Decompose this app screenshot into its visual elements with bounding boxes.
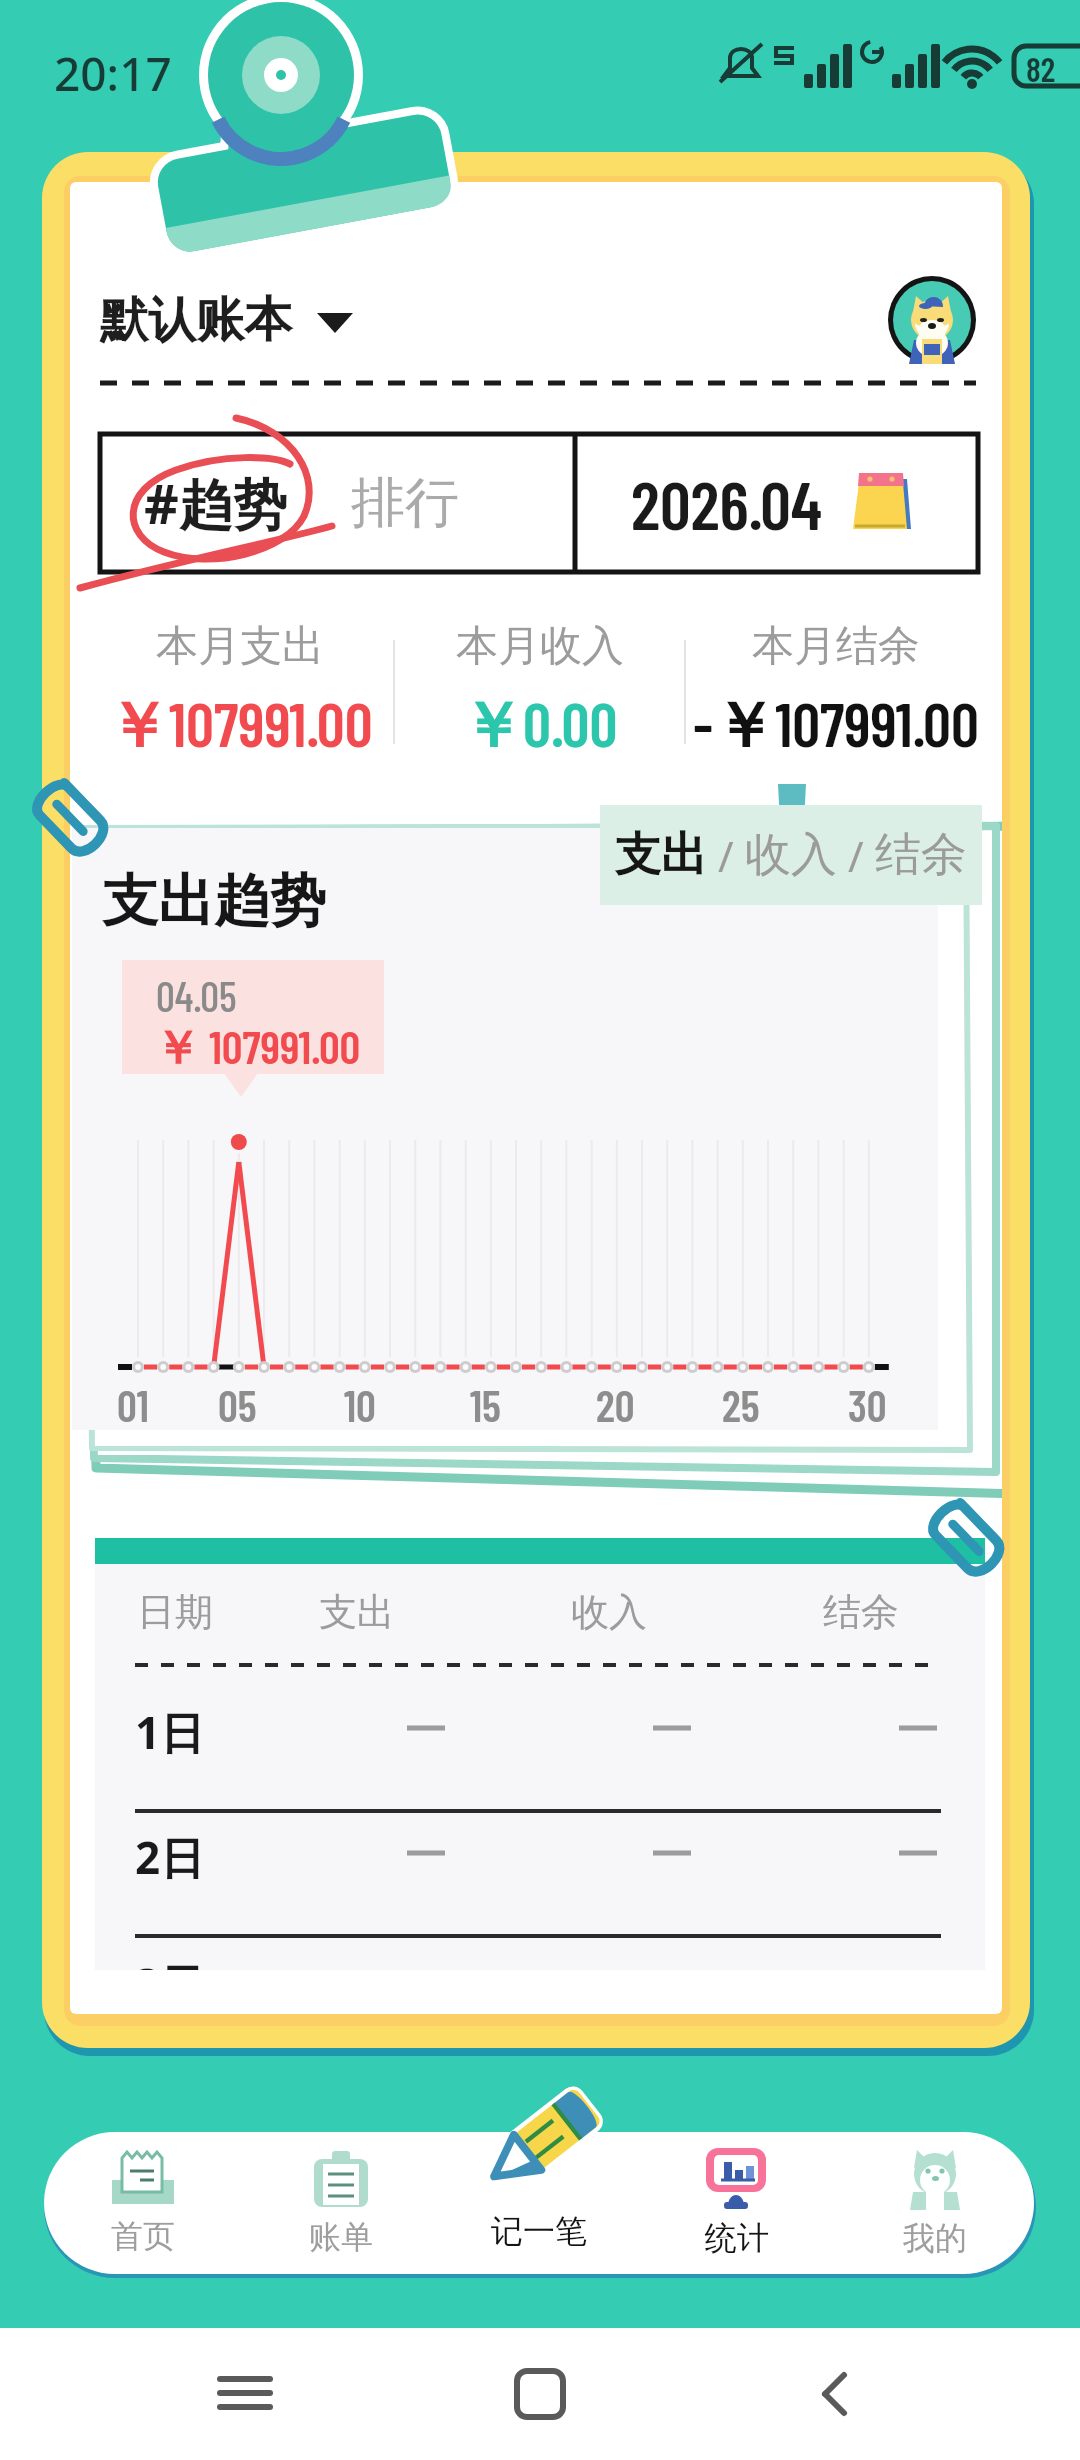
button[interactable]: 本月收入 xyxy=(395,614,684,770)
staticText: 记一笔 xyxy=(491,2211,587,2251)
button[interactable]: 2日 xyxy=(95,1815,985,1940)
staticText: 支出趋势 xyxy=(102,866,326,937)
staticText: 25 xyxy=(722,1378,760,1431)
button[interactable]: Back xyxy=(785,2344,885,2444)
staticText: 排行 xyxy=(351,469,459,537)
staticText: ￥0.00 xyxy=(461,685,618,765)
staticText: / xyxy=(837,827,875,884)
button[interactable]: Add record xyxy=(462,2060,622,2220)
staticText: ￥107991.00 xyxy=(107,685,373,765)
button[interactable]: Profile xyxy=(888,276,976,364)
staticText: 支出 xyxy=(615,826,707,884)
button[interactable]: Recents xyxy=(195,2344,295,2444)
button[interactable]: #趋势 xyxy=(134,450,297,556)
staticText: 统计 xyxy=(705,2218,769,2258)
button[interactable]: 默认账本 xyxy=(100,282,356,358)
staticText: 20:17 xyxy=(54,42,172,105)
staticText: 支出 xyxy=(319,1588,395,1636)
staticText: 2026.04 xyxy=(631,462,823,544)
staticText: 首页 xyxy=(111,2216,175,2256)
button[interactable]: 首页 xyxy=(44,2132,242,2274)
staticText: 本月收入 xyxy=(456,620,624,673)
staticText: 01 xyxy=(117,1378,149,1431)
button[interactable]: 记一笔 xyxy=(440,2132,638,2274)
staticText: 3日 xyxy=(135,1954,205,1970)
staticText: 20 xyxy=(596,1378,635,1431)
button[interactable]: 1日 xyxy=(95,1690,985,1815)
staticText: ￥ 107991.00 xyxy=(154,1018,361,1078)
staticText: 本月结余 xyxy=(752,620,920,673)
staticText: 2日 xyxy=(135,1827,205,1887)
staticText: 账单 xyxy=(309,2217,373,2257)
staticText: 82 xyxy=(1026,48,1056,89)
button[interactable]: 账单 xyxy=(242,2132,440,2274)
staticText: 默认账本 xyxy=(100,290,292,350)
staticText: 15 xyxy=(470,1378,501,1431)
button[interactable]: Home xyxy=(490,2344,590,2444)
staticText: 10 xyxy=(344,1378,376,1431)
staticText: 收入 xyxy=(571,1588,647,1636)
staticText: 结余 xyxy=(875,826,967,884)
staticText: 05 xyxy=(218,1378,257,1431)
button[interactable]: 本月支出 xyxy=(86,614,393,770)
button[interactable]: 本月结余 xyxy=(686,614,986,770)
staticText: 结余 xyxy=(823,1588,899,1636)
staticText: -￥107991.00 xyxy=(693,685,979,765)
staticText: #趋势 xyxy=(144,466,287,540)
button[interactable]: 2026.04 xyxy=(575,434,978,572)
button[interactable]: 我的 xyxy=(836,2132,1034,2274)
staticText: 日期 xyxy=(137,1588,213,1636)
staticText: 收入 xyxy=(745,826,837,884)
staticText: 1日 xyxy=(135,1702,205,1762)
button[interactable]: 支出 xyxy=(600,805,982,905)
button[interactable]: 排行 xyxy=(341,453,469,553)
button[interactable]: 统计 xyxy=(638,2132,836,2274)
staticText: 04.05 xyxy=(156,970,237,1020)
staticText: / xyxy=(707,827,745,884)
staticText: 30 xyxy=(848,1378,887,1431)
staticText: 本月支出 xyxy=(156,620,324,673)
staticText: 我的 xyxy=(903,2218,967,2258)
